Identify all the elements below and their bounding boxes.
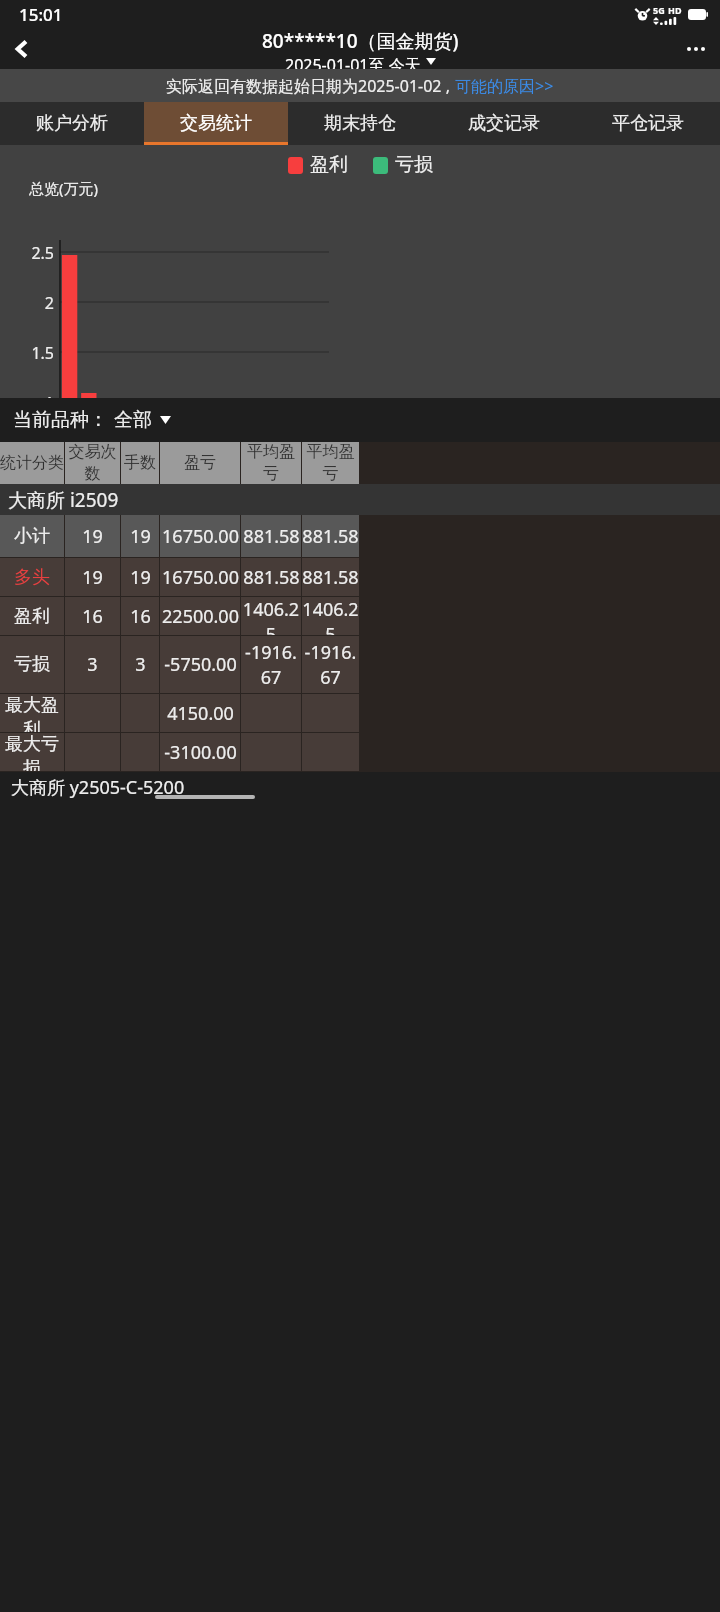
staticText: 5G xyxy=(653,4,665,16)
staticText: RM xyxy=(112,509,143,539)
staticText: 2.5 xyxy=(6,242,54,264)
staticText: SA xyxy=(249,510,275,537)
staticText: 最大盈利 xyxy=(0,694,64,732)
staticText: 4150.00 xyxy=(167,701,234,726)
staticText: 最大亏损 xyxy=(0,733,64,771)
staticText: 多头 xyxy=(14,566,50,589)
button[interactable]: 3 xyxy=(121,636,159,693)
staticText: 1.5 xyxy=(6,342,54,364)
staticText: 3 xyxy=(135,652,146,677)
button[interactable]: 881.58 xyxy=(302,558,359,596)
button[interactable]: 16 xyxy=(121,597,159,635)
staticText: 盈利 xyxy=(14,605,50,628)
button[interactable]: -3100.00 xyxy=(160,733,240,771)
button[interactable]: 期末持仓 xyxy=(288,102,432,145)
staticText: -5750.00 xyxy=(164,652,237,677)
staticText: 2 xyxy=(6,292,54,314)
staticText: 总览(万元) xyxy=(29,178,99,198)
button[interactable]: 1406.25 xyxy=(302,597,359,635)
staticText: 全部 xyxy=(114,408,152,432)
button[interactable]: -5750.00 xyxy=(160,636,240,693)
button[interactable]: 多头 xyxy=(0,558,64,596)
button[interactable]: 22500.00 xyxy=(160,597,240,635)
staticText: v xyxy=(156,514,176,534)
staticText: 盈利 xyxy=(310,153,348,177)
staticText: HD xyxy=(668,4,682,16)
button[interactable]: -1916.67 xyxy=(302,636,359,693)
staticText: 1406.25 xyxy=(241,597,301,635)
staticText: 16750.00 xyxy=(162,524,239,549)
staticText: -3100.00 xyxy=(164,740,237,765)
staticText: 19 xyxy=(82,524,103,549)
button[interactable]: 最大盈利 xyxy=(0,694,64,732)
staticText: y xyxy=(79,514,99,534)
button[interactable]: 4150.00 xyxy=(160,694,240,732)
button[interactable]: 交易统计 xyxy=(144,102,288,145)
staticText: MA xyxy=(284,508,316,539)
staticText: TA xyxy=(133,511,159,537)
staticText: 账户分析 xyxy=(36,112,108,135)
staticText: 881.58 xyxy=(243,565,300,590)
button[interactable]: 19 xyxy=(121,558,159,596)
staticText: 大商所 i2509 xyxy=(8,487,119,513)
staticText: 3 xyxy=(87,652,98,677)
button[interactable]: 881.58 xyxy=(241,558,301,596)
button[interactable]: 账户分析 xyxy=(0,102,144,145)
staticText: fu xyxy=(96,512,121,536)
staticText: 80*****10（国金期货) xyxy=(262,28,459,54)
staticText: SR xyxy=(268,510,294,537)
button[interactable]: 平仓记录 xyxy=(576,102,720,145)
staticText: 19 xyxy=(82,565,103,590)
button[interactable]: 16750.00 xyxy=(160,558,240,596)
button[interactable]: 1406.25 xyxy=(241,597,301,635)
staticText: 16 xyxy=(82,604,103,629)
button[interactable]: 16750.00 xyxy=(160,515,240,557)
staticText: sp xyxy=(172,511,198,537)
staticText: FG xyxy=(230,510,257,538)
staticText: 亏损 xyxy=(395,153,433,177)
staticText: jd xyxy=(192,512,216,536)
button[interactable]: 当前品种： xyxy=(13,408,171,432)
staticText: 盈亏 xyxy=(184,453,216,473)
button[interactable]: 小计 xyxy=(0,515,64,557)
button[interactable]: 可能的原因>> xyxy=(455,75,554,97)
staticText: 19 xyxy=(130,524,151,549)
button[interactable]: 亏损 xyxy=(0,636,64,693)
button[interactable]: 2025-01-01至 今天 xyxy=(285,54,436,69)
staticText: 0 xyxy=(6,492,54,514)
button[interactable]: 16 xyxy=(65,597,120,635)
button[interactable]: 19 xyxy=(65,515,120,557)
button[interactable]: 19 xyxy=(65,558,120,596)
staticText: 平仓记录 xyxy=(612,112,684,135)
staticText: -1916.67 xyxy=(302,640,359,690)
button[interactable]: 19 xyxy=(121,515,159,557)
staticText: 亏损 xyxy=(14,653,50,676)
button[interactable]: 3 xyxy=(65,636,120,693)
staticText: 22500.00 xyxy=(162,604,239,629)
staticText: 交易次数 xyxy=(65,442,120,484)
button[interactable]: 881.58 xyxy=(241,515,301,557)
staticText: 实际返回有数据起始日期为2025-01-02 , xyxy=(166,75,455,97)
button[interactable]: 最大亏损 xyxy=(0,733,64,771)
button[interactable]: 成交记录 xyxy=(432,102,576,145)
staticText: SM xyxy=(304,509,334,539)
staticText: 16 xyxy=(130,604,151,629)
button[interactable]: More options xyxy=(676,29,716,69)
staticText: 手数 xyxy=(124,453,156,473)
staticText: 19 xyxy=(130,565,151,590)
button[interactable]: -1916.67 xyxy=(241,636,301,693)
button[interactable]: Back xyxy=(2,29,42,69)
staticText: 2025-01-01至 今天 xyxy=(285,54,421,69)
staticText: 平均盈亏 (每手) xyxy=(302,442,359,484)
button[interactable]: 盈利 xyxy=(0,597,64,635)
staticText: 统计分类 xyxy=(0,453,64,473)
button[interactable]: 881.58 xyxy=(302,515,359,557)
